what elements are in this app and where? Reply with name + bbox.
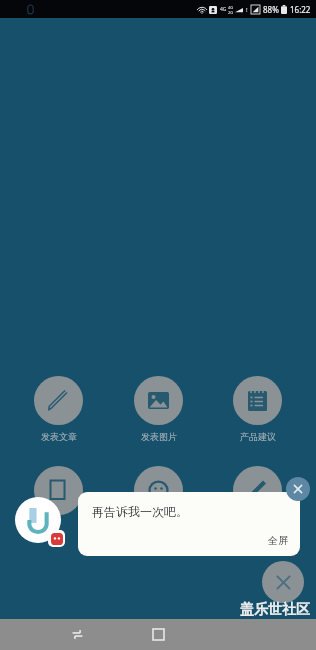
staticText: 发表文章 — [41, 431, 77, 442]
staticText: 4G — [220, 6, 227, 13]
staticText: 88% — [263, 4, 279, 15]
staticText: 发表图片 — [141, 431, 177, 442]
button[interactable]: Recents — [62, 619, 92, 650]
staticText: 盖乐世社区 — [240, 601, 310, 619]
button[interactable]: 再告诉我一次吧。 — [78, 492, 300, 556]
button[interactable]: 发表图片 — [134, 376, 183, 442]
staticText: ! — [246, 6, 248, 14]
button[interactable]: 产品建议 — [233, 376, 282, 442]
staticText: 16:22 — [290, 4, 311, 15]
button[interactable]: Assistant — [15, 497, 65, 547]
staticText: 再告诉我一次吧。 — [92, 504, 188, 519]
button[interactable]: Shortcut — [233, 466, 282, 515]
button[interactable]: 全屏 — [268, 534, 288, 547]
button[interactable]: 发表文章 — [34, 376, 83, 442]
button[interactable]: Close dialog — [286, 477, 310, 501]
staticText: 产品建议 — [240, 431, 276, 442]
button[interactable]: Close — [262, 561, 304, 603]
button[interactable]: Home — [143, 619, 173, 650]
button[interactable]: Shortcut — [34, 466, 83, 515]
staticText: 2G — [228, 10, 234, 15]
staticText: 4G — [228, 5, 234, 10]
button[interactable]: Shortcut — [134, 466, 183, 515]
